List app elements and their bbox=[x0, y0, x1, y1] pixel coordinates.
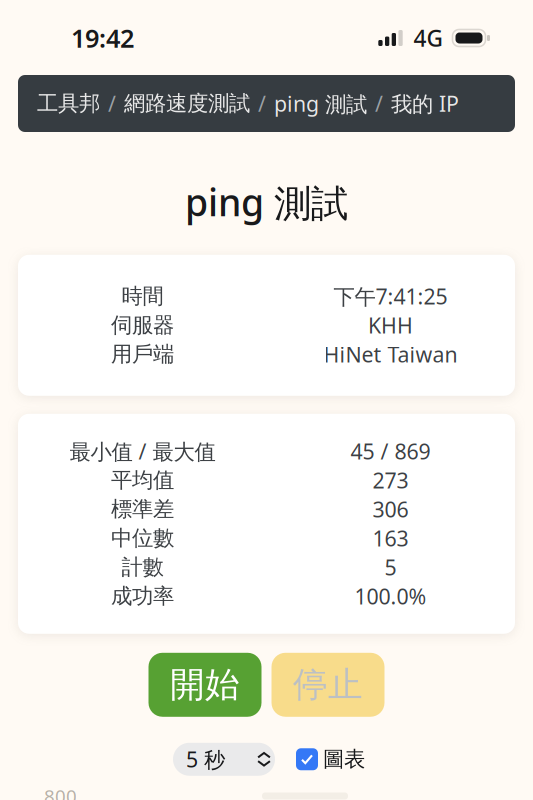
staticText: ping 測試 bbox=[185, 177, 348, 227]
button[interactable]: 我的 IP bbox=[391, 89, 459, 118]
staticText: 停止 bbox=[293, 663, 363, 706]
staticText: 163 bbox=[372, 524, 408, 552]
staticText: 標準差 bbox=[111, 496, 174, 522]
staticText: / bbox=[108, 89, 116, 118]
staticText: 中位數 bbox=[111, 525, 174, 551]
staticText: 平均值 bbox=[111, 467, 174, 493]
staticText: 伺服器 bbox=[111, 312, 174, 338]
button[interactable]: ping 測試 bbox=[274, 89, 367, 118]
staticText: 273 bbox=[372, 466, 408, 494]
button[interactable]: 停止 bbox=[271, 653, 384, 717]
staticText: 工具邦 bbox=[37, 90, 100, 117]
staticText: 網路速度測試 bbox=[124, 90, 250, 117]
staticText: 計數 bbox=[121, 554, 163, 580]
staticText: 圖表 bbox=[323, 746, 365, 772]
staticText: / bbox=[258, 89, 266, 118]
staticText: 時間 bbox=[121, 283, 163, 309]
staticText: 開始 bbox=[170, 663, 240, 706]
staticText: / bbox=[375, 89, 383, 118]
staticText: 100.0% bbox=[354, 582, 426, 610]
staticText: 45 / 869 bbox=[350, 437, 430, 465]
staticText: 5 秒 bbox=[186, 745, 225, 773]
staticText: 19:42 bbox=[71, 21, 134, 55]
staticText: 306 bbox=[372, 495, 408, 523]
staticText: 5 bbox=[384, 553, 396, 581]
staticText: 800 bbox=[44, 784, 77, 800]
button[interactable]: 工具邦 bbox=[37, 90, 100, 117]
button[interactable]: 開始 bbox=[148, 653, 261, 717]
staticText: 成功率 bbox=[111, 583, 174, 609]
staticText: KHH bbox=[368, 311, 413, 339]
button[interactable]: 5 秒 bbox=[173, 743, 275, 776]
staticText: 最小值 / 最大值 bbox=[69, 437, 215, 465]
staticText: 用戶端 bbox=[111, 341, 174, 367]
button[interactable]: 圖表 bbox=[296, 746, 365, 772]
staticText: HiNet Taiwan bbox=[323, 340, 457, 368]
staticText: 下午7:41:25 bbox=[333, 282, 447, 310]
staticText: 我的 IP bbox=[391, 89, 459, 118]
button[interactable]: 網路速度測試 bbox=[124, 90, 250, 117]
staticText: 4G bbox=[413, 23, 442, 53]
staticText: ping 測試 bbox=[274, 89, 367, 118]
